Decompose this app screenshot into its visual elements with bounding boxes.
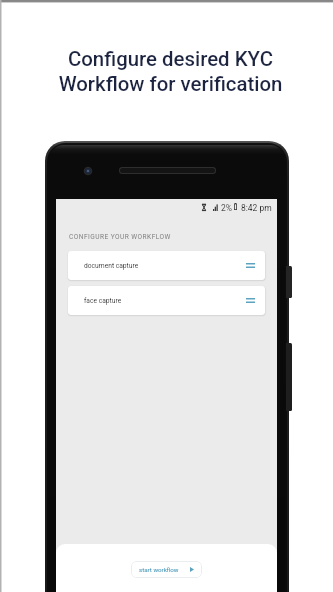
staticText: document capture: [84, 262, 139, 270]
button[interactable]: start workflow: [131, 561, 202, 578]
staticText: 8:42 pm: [241, 203, 272, 213]
staticText: Configure desired KYC Workflow for verif…: [4, 47, 333, 96]
staticText: CONFIGURE YOUR WORKFLOW: [69, 233, 171, 241]
staticText: face capture: [84, 297, 122, 305]
staticText: start workflow: [139, 566, 179, 573]
other: Reorder: [246, 263, 255, 268]
other: Reorder: [246, 298, 255, 303]
staticText: 2%: [221, 203, 233, 213]
button[interactable]: document capture: [68, 251, 265, 280]
button[interactable]: face capture: [68, 286, 265, 315]
